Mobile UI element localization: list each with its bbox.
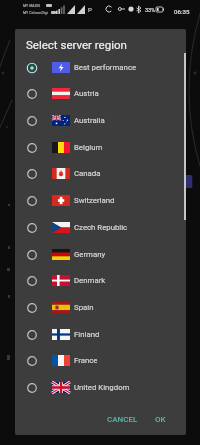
button[interactable]: Austria: [15, 80, 186, 107]
staticText: Canada: [74, 169, 101, 178]
staticText: Best performance: [74, 63, 137, 72]
button[interactable]: Finland: [15, 321, 186, 348]
button[interactable]: Best performance: [15, 54, 186, 81]
staticText: Belgium: [74, 143, 103, 152]
staticText: MY CelcomDigi: [23, 11, 48, 15]
button[interactable]: CANCEL: [101, 409, 144, 430]
staticText: OK: [155, 415, 166, 424]
button[interactable]: OK: [149, 409, 172, 430]
button[interactable]: Belgium: [15, 134, 186, 161]
button[interactable]: Switzerland: [15, 187, 186, 214]
staticText: Germany: [74, 250, 106, 259]
staticText: P: [88, 6, 92, 13]
staticText: CANCEL: [107, 415, 138, 424]
staticText: United Kingdom: [74, 383, 130, 392]
staticText: Czech Republic: [74, 223, 128, 232]
staticText: Australia: [74, 116, 105, 125]
button[interactable]: Australia: [15, 107, 186, 134]
button[interactable]: United Kingdom: [15, 374, 186, 401]
staticText: Denmark: [74, 276, 106, 285]
button[interactable]: France: [15, 347, 186, 374]
button[interactable]: Canada: [15, 160, 186, 187]
button[interactable]: Czech Republic: [15, 214, 186, 241]
staticText: Spain: [74, 303, 94, 312]
button[interactable]: Spain: [15, 294, 186, 321]
staticText: France: [74, 356, 98, 365]
staticText: 06:35: [174, 8, 190, 15]
staticText: Switzerland: [74, 196, 115, 205]
button[interactable]: Denmark: [15, 267, 186, 294]
button[interactable]: Germany: [15, 241, 186, 268]
staticText: Finland: [74, 330, 100, 339]
staticText: MY MAXIS: [23, 4, 41, 8]
staticText: Austria: [74, 89, 99, 98]
staticText: 33%: [145, 7, 156, 13]
staticText: Select server region: [26, 38, 127, 51]
